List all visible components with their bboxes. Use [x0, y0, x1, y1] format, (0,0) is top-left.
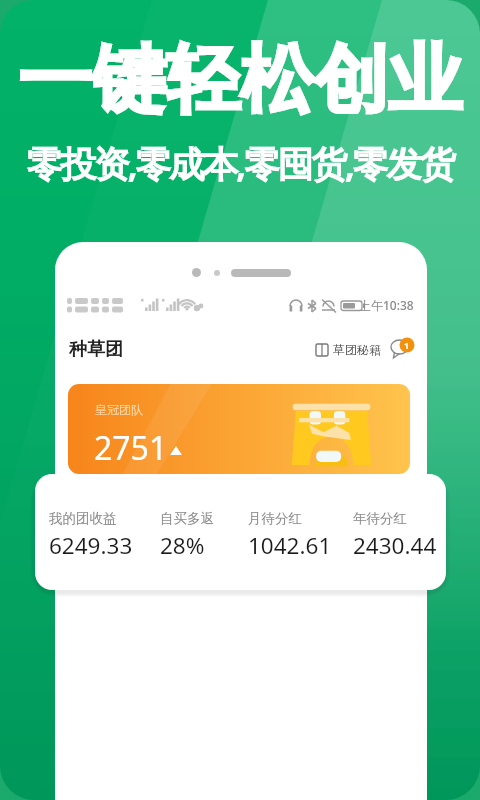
- staticText: 皇冠团队: [95, 402, 143, 417]
- staticText: 1: [404, 339, 410, 351]
- staticText: 28%: [160, 530, 205, 561]
- staticText: 年待分红: [353, 510, 407, 527]
- staticText: 草团秘籍: [333, 342, 381, 357]
- staticText: 自买多返: [160, 510, 214, 527]
- staticText: 零投资,零成本,零囤货,零发货: [0, 139, 480, 188]
- staticText: 2430.44: [353, 530, 437, 561]
- button[interactable]: Messages: [391, 338, 414, 361]
- staticText: 6249.33: [49, 530, 133, 561]
- staticText: 1042.61: [248, 530, 332, 561]
- button[interactable]: 草团秘籍: [313, 340, 383, 359]
- staticText: 月待分红: [248, 510, 302, 527]
- staticText: 种草团: [69, 338, 123, 361]
- staticText: 2751: [94, 426, 168, 470]
- staticText: 我的团收益: [49, 510, 117, 527]
- staticText: 一键轻松创业: [0, 34, 480, 127]
- staticText: 上午10:38: [359, 297, 414, 313]
